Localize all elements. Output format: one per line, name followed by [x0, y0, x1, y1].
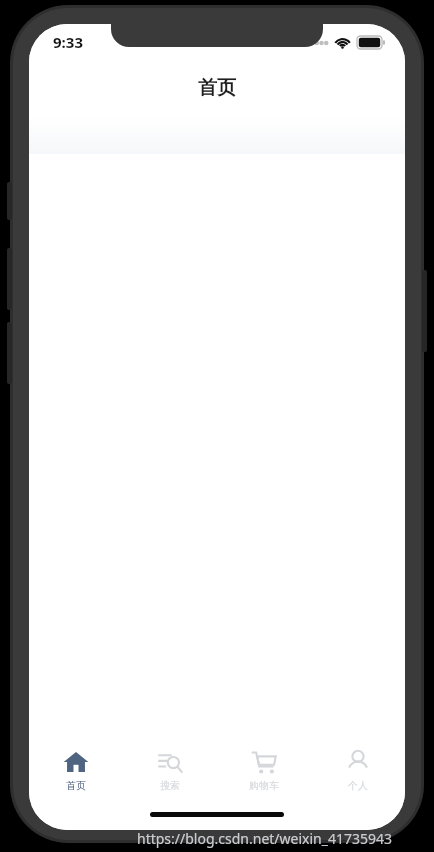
staticText: https://blog.csdn.net/weixin_41735943: [137, 829, 393, 848]
staticText: 9:33: [53, 32, 83, 52]
button[interactable]: 购物车: [217, 740, 311, 800]
staticText: 搜索: [160, 779, 180, 792]
button[interactable]: 搜索: [123, 740, 217, 800]
staticText: 首页: [198, 76, 236, 100]
button[interactable]: 个人: [311, 740, 405, 800]
staticText: 首页: [66, 779, 86, 792]
staticText: 购物车: [249, 779, 279, 792]
button[interactable]: 首页: [29, 740, 123, 800]
staticText: 个人: [348, 779, 368, 792]
